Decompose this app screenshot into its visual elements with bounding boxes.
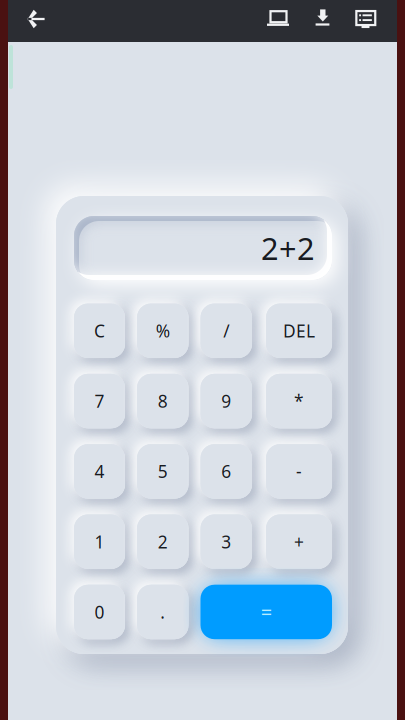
button[interactable]: 0 [74,585,125,639]
button[interactable]: 5 [137,444,188,499]
staticText: 4 [94,460,104,483]
staticText: . [160,600,165,623]
staticText: 6 [221,460,231,483]
staticText: C [94,319,105,342]
staticText: * [294,389,304,412]
button[interactable]: - [266,444,332,499]
staticText: 1 [94,530,104,553]
button[interactable]: . [137,585,188,639]
button[interactable]: 3 [200,514,252,569]
button[interactable]: * [266,374,332,428]
staticText: 3 [221,530,231,553]
staticText: - [296,460,302,483]
staticText: 7 [94,389,104,412]
button[interactable]: + [266,514,332,569]
button[interactable]: 4 [74,444,125,499]
staticText: % [156,319,170,342]
button[interactable]: Desktop view [258,0,298,39]
staticText: = [261,599,272,625]
staticText: + [294,530,304,553]
staticText: 8 [158,389,168,412]
staticText: 2+2 [261,228,315,268]
staticText: DEL [283,319,315,342]
button[interactable]: % [137,303,188,358]
staticText: / [223,319,229,342]
button[interactable]: 9 [200,374,252,428]
button[interactable]: C [74,303,125,358]
button[interactable]: DEL [266,303,332,358]
button[interactable]: Back [16,0,56,40]
staticText: 2 [158,530,168,553]
button[interactable]: 8 [137,374,188,428]
staticText: 5 [158,460,168,483]
button[interactable]: Download [302,0,342,38]
staticText: 9 [221,389,231,412]
button[interactable]: 2 [137,514,188,569]
staticText: 0 [94,600,104,623]
button[interactable]: 1 [74,514,125,569]
button[interactable]: 7 [74,374,125,428]
button[interactable]: 6 [200,444,252,499]
button[interactable]: = [200,585,332,639]
button[interactable]: / [200,303,252,358]
button[interactable]: Console [346,0,386,40]
